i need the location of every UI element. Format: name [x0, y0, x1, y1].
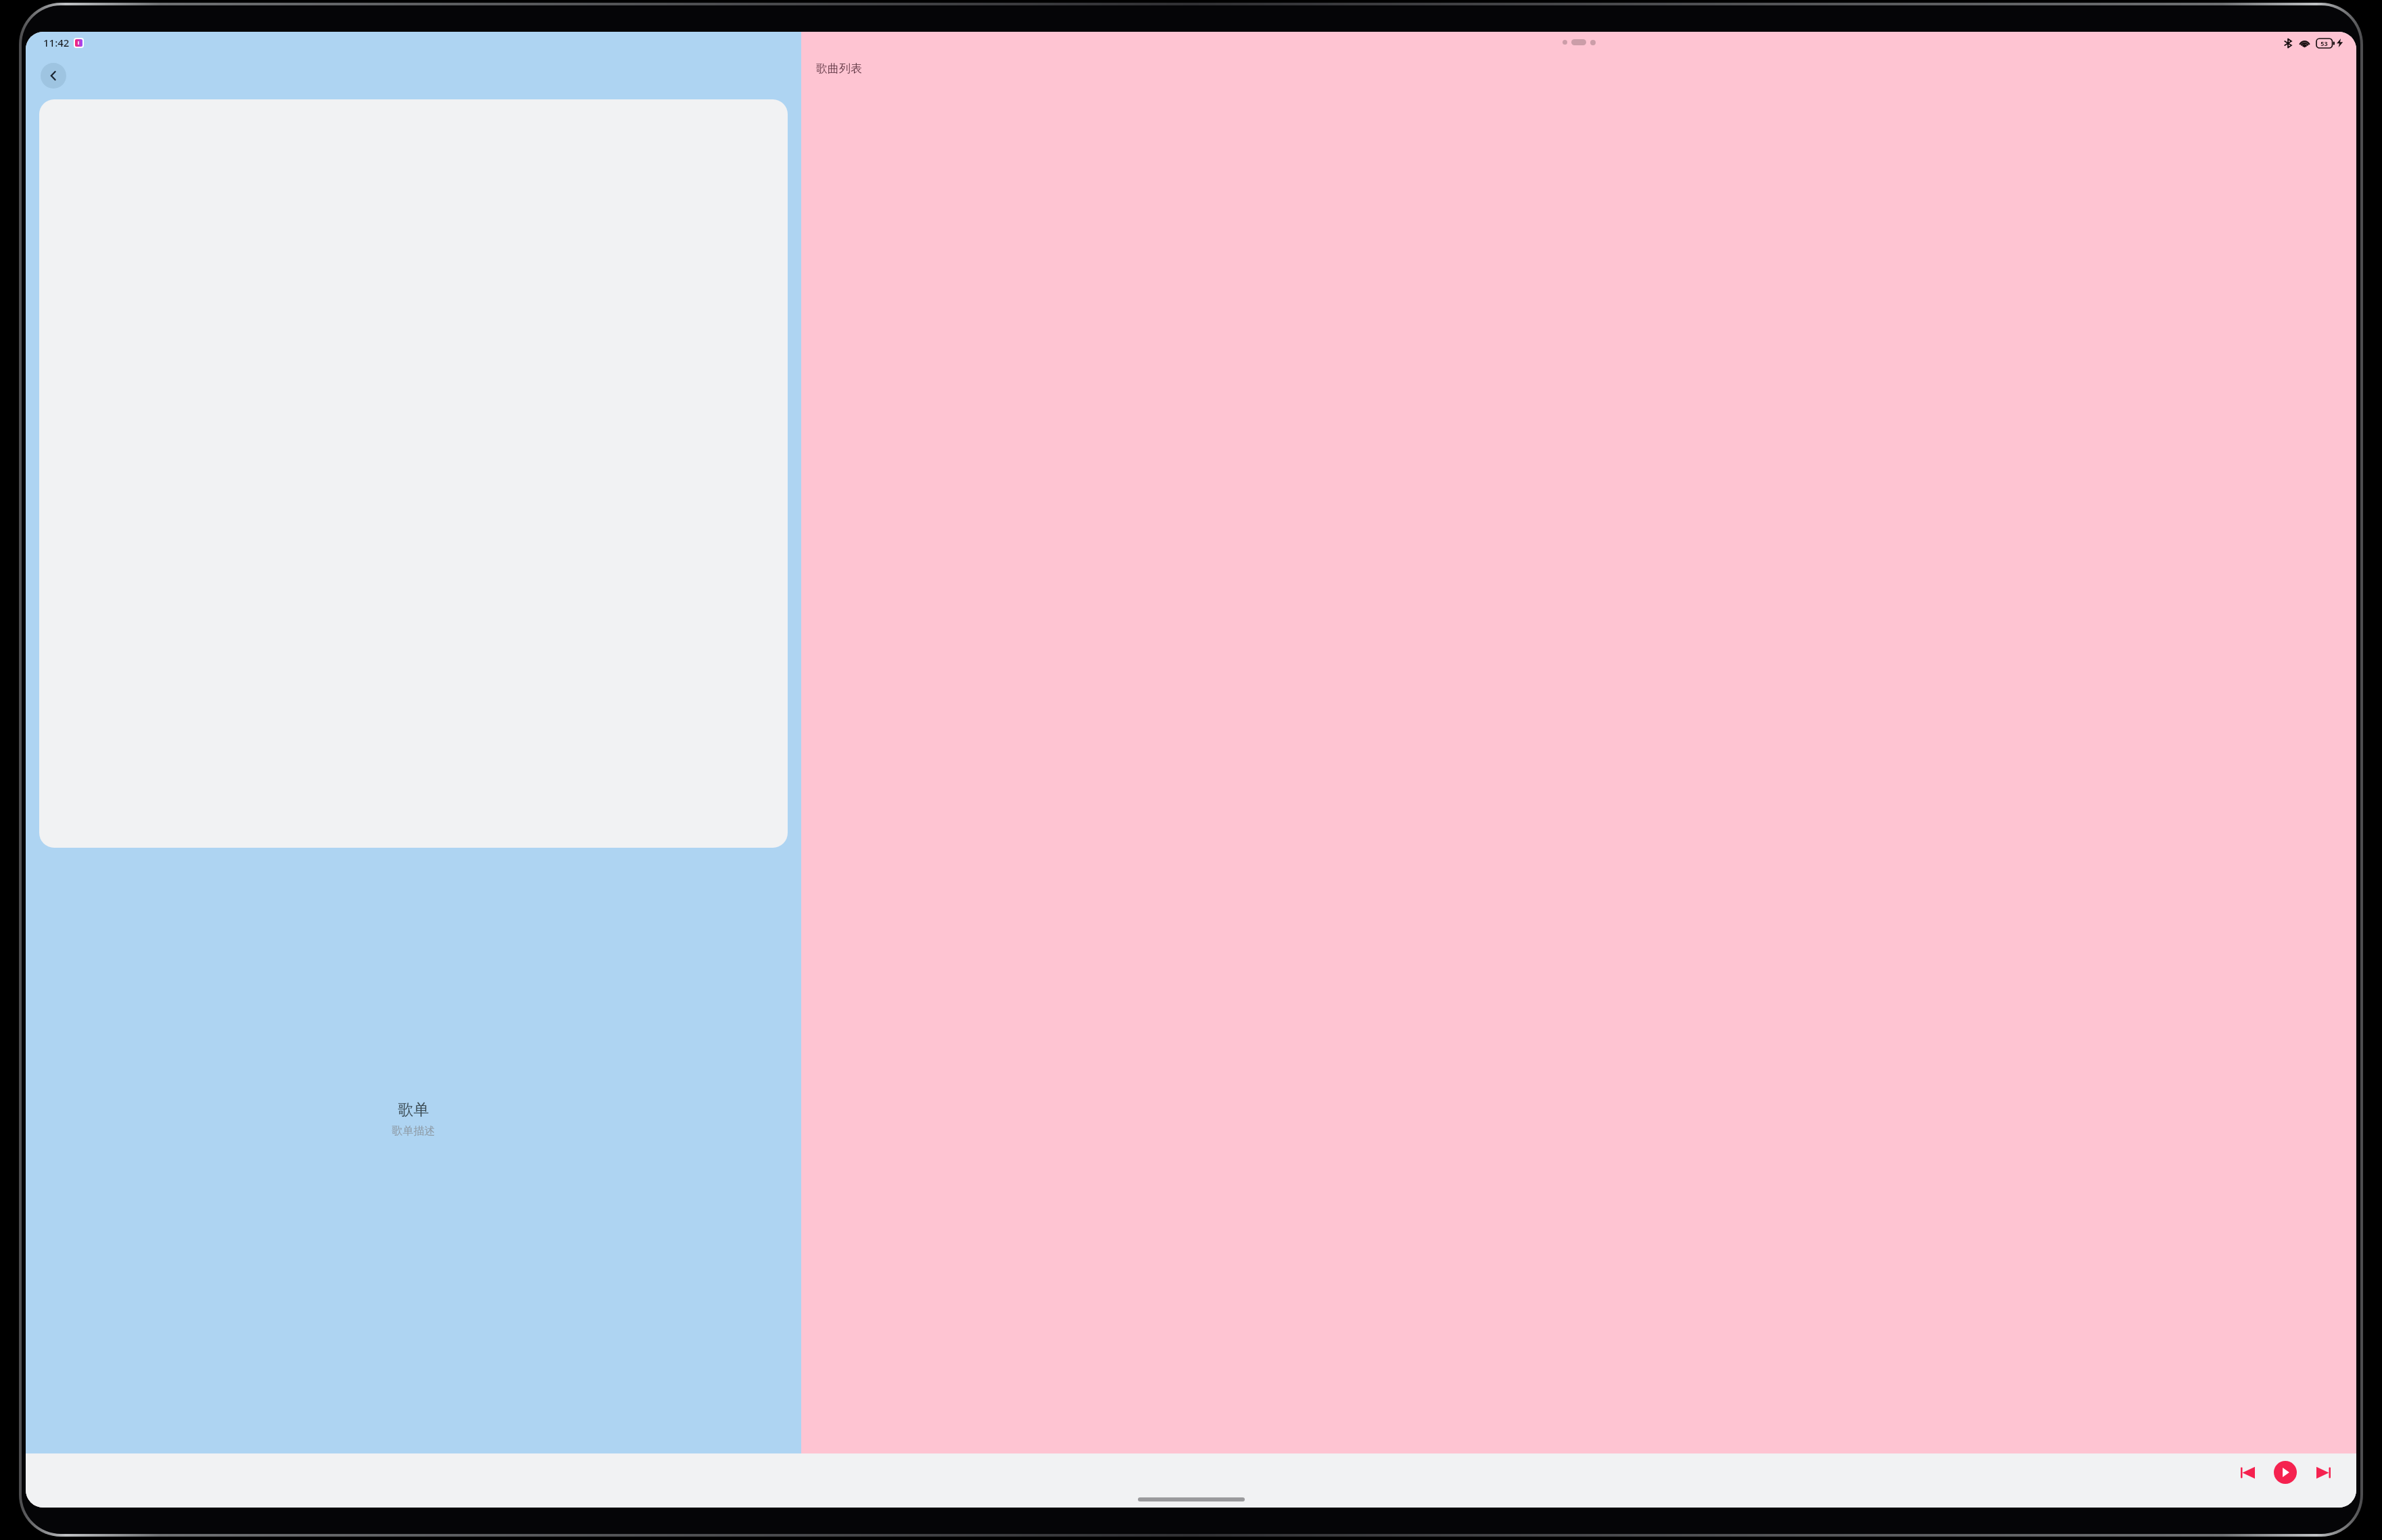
- button[interactable]: Play: [2274, 1461, 2297, 1484]
- button[interactable]: Back: [41, 63, 66, 89]
- staticText: 11:42: [43, 36, 70, 49]
- staticText: i: [78, 40, 80, 47]
- button[interactable]: Next: [2312, 1461, 2335, 1484]
- staticText: 歌曲列表: [816, 62, 862, 76]
- staticText: 歌单描述: [26, 1124, 801, 1138]
- button[interactable]: Previous: [2236, 1461, 2259, 1484]
- staticText: 歌单: [26, 1100, 801, 1120]
- button[interactable]: Playlist cover: [39, 99, 788, 848]
- staticText: 53: [2316, 39, 2332, 47]
